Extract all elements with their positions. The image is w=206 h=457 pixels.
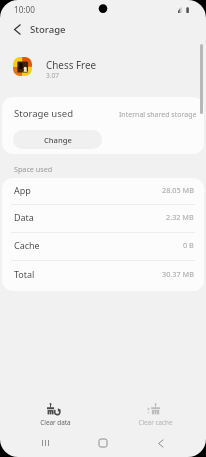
staticText: Clear cache <box>138 418 173 427</box>
staticText: App <box>14 184 31 196</box>
staticText: Total <box>14 268 35 280</box>
staticText: Storage <box>30 23 66 36</box>
button[interactable]: Data <box>2 205 204 233</box>
staticText: 10:00 <box>14 4 35 15</box>
staticText: Space used <box>14 164 53 174</box>
staticText: Change <box>44 135 72 145</box>
button[interactable]: Cache <box>2 233 204 261</box>
button[interactable]: App <box>2 178 204 205</box>
button[interactable]: Total <box>2 261 204 291</box>
staticText: 0 B <box>183 240 194 250</box>
button[interactable]: Back <box>6 19 27 40</box>
button[interactable]: Clear cache <box>105 400 205 428</box>
staticText: 28.05 MB <box>162 185 194 195</box>
staticText: Data <box>14 211 34 223</box>
staticText: Cache <box>14 239 40 251</box>
staticText: Storage used <box>14 107 74 120</box>
button[interactable]: Back <box>146 432 174 454</box>
button[interactable]: Home <box>89 432 117 454</box>
staticText: 3.07 <box>46 71 60 80</box>
button[interactable]: Change <box>13 130 102 149</box>
staticText: 30.37 MB <box>162 269 194 279</box>
staticText: Chess Free <box>46 58 97 71</box>
staticText: Clear data <box>40 418 71 427</box>
staticText: Internal shared storage <box>119 110 197 120</box>
button[interactable]: Recent apps <box>31 432 59 454</box>
staticText: 2.32 MB <box>166 212 194 222</box>
button[interactable]: Clear data <box>5 400 105 428</box>
